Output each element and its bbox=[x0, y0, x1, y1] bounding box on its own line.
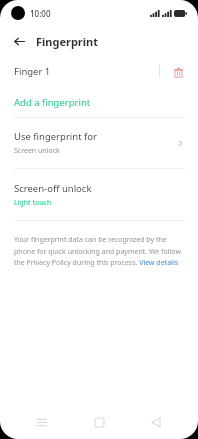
button[interactable]: Home bbox=[84, 407, 114, 437]
staticText: Screen-off unlock bbox=[14, 182, 92, 195]
staticText: Finger 1 bbox=[14, 65, 51, 78]
staticText: Light touch bbox=[14, 198, 52, 208]
staticText: Use fingerprint for bbox=[14, 130, 97, 143]
button[interactable]: Add a fingerprint bbox=[0, 87, 198, 117]
button[interactable]: Back bbox=[8, 30, 30, 52]
button[interactable]: Screen-off unlock bbox=[0, 169, 198, 220]
button[interactable]: Delete fingerprint bbox=[168, 62, 188, 82]
button[interactable]: Finger 1 bbox=[0, 56, 198, 87]
button[interactable]: Use fingerprint for bbox=[0, 118, 198, 168]
button[interactable]: Back bbox=[141, 407, 171, 437]
staticText: Screen unlock bbox=[14, 146, 60, 156]
staticText: Add a fingerprint bbox=[14, 96, 91, 109]
button[interactable]: Recent apps bbox=[27, 407, 57, 437]
staticText: Fingerprint bbox=[36, 34, 98, 49]
button[interactable]: Your fingerprint data can be recognized … bbox=[14, 235, 184, 267]
staticText: 10:00 bbox=[30, 8, 51, 19]
staticText: Your fingerprint data can be recognized … bbox=[14, 235, 184, 267]
